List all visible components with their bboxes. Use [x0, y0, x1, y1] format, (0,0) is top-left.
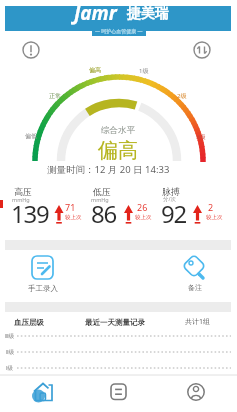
button[interactable] [158, 376, 237, 412]
staticText: 较上次 [206, 214, 223, 221]
button[interactable] [15, 36, 47, 64]
staticText: 86 [91, 197, 117, 230]
button[interactable] [172, 252, 218, 296]
staticText: 2 [208, 201, 214, 213]
staticText: 26 [137, 201, 148, 213]
staticText: Ⅲ级 [5, 333, 15, 340]
staticText: 正常 [49, 92, 61, 100]
staticText: 共计1组 [185, 317, 211, 327]
staticText: 综合水平 [101, 125, 135, 136]
staticText: 备注 [188, 283, 202, 292]
staticText: 捷美瑞 [127, 5, 169, 23]
staticText: 偏高 [89, 66, 101, 74]
button[interactable] [186, 36, 218, 64]
staticText: Ⅱ级 [6, 349, 15, 356]
staticText: 高压 [14, 186, 32, 197]
button[interactable] [79, 376, 158, 412]
staticText: — 呵护心血管健康 — [95, 28, 143, 35]
staticText: 较上次 [135, 214, 152, 221]
staticText: 2级 [177, 92, 187, 100]
button[interactable] [0, 376, 79, 412]
staticText: 手工录入 [28, 284, 58, 293]
staticText: 较上次 [65, 214, 82, 221]
staticText: 脉搏 [162, 186, 180, 197]
staticText: Jamr [74, 0, 117, 26]
button[interactable] [5, 6, 231, 31]
button[interactable] [18, 252, 68, 296]
staticText: 3级 [196, 133, 206, 141]
staticText: 偏低 [25, 132, 37, 140]
staticText: 最近一天测量记录 [85, 318, 145, 327]
staticText: 分/次 [163, 195, 177, 203]
staticText: 低压 [93, 186, 111, 197]
staticText: 血压层级 [14, 318, 44, 327]
staticText: mmHg [91, 196, 109, 203]
staticText: 139 [11, 197, 49, 230]
staticText: 偏高 [98, 138, 138, 163]
staticText: 71 [65, 201, 76, 213]
staticText: mmHg [12, 196, 30, 203]
staticText: Ⅰ级 [6, 365, 14, 372]
staticText: 测量时间：12 月 20 日 14:33 [47, 163, 170, 176]
staticText: 92 [161, 197, 187, 230]
staticText: 1级 [139, 67, 149, 75]
